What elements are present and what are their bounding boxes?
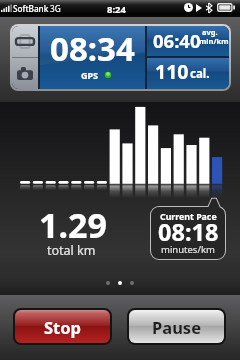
button[interactable]: Camera <box>12 58 38 89</box>
staticText: total km <box>47 242 96 259</box>
staticText: 3G <box>50 3 61 14</box>
staticText: cal. <box>190 66 210 82</box>
staticText: 08:34 <box>50 26 135 71</box>
button[interactable]: Current Pace <box>151 198 225 259</box>
staticText: Stop <box>44 316 81 338</box>
staticText: 06:40 <box>153 28 201 53</box>
staticText: 8:24 <box>107 3 126 16</box>
staticText: Current Pace <box>160 211 217 223</box>
staticText: 08:18 <box>158 216 219 248</box>
staticText: minutes/km <box>161 243 215 256</box>
button[interactable]: Stop <box>15 310 110 343</box>
button[interactable]: Pause <box>129 310 224 343</box>
staticText: GPS <box>81 69 99 81</box>
staticText: avg. <box>202 27 218 37</box>
staticText: min/km <box>199 36 229 46</box>
other: Route <box>16 35 34 48</box>
button[interactable]: Route <box>12 26 38 57</box>
staticText: 1.29 <box>39 202 107 248</box>
staticText: 110 <box>155 58 189 85</box>
other: Camera <box>17 67 33 80</box>
staticText: SoftBank <box>13 3 49 14</box>
staticText: Pause <box>152 316 201 338</box>
